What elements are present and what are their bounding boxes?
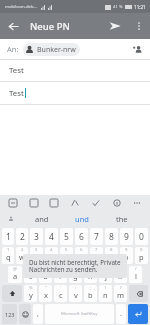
button[interactable]: Zwischenablage bbox=[46, 195, 62, 211]
button[interactable]: 6 bbox=[75, 228, 88, 245]
staticText: c bbox=[59, 290, 63, 300]
button[interactable]: 7 bbox=[90, 228, 103, 245]
button[interactable]: # bbox=[24, 266, 37, 283]
staticText: + bbox=[89, 266, 92, 272]
staticText: k bbox=[118, 271, 123, 281]
button[interactable]: @ bbox=[8, 266, 22, 283]
button[interactable]: * bbox=[54, 266, 67, 283]
button[interactable]: Eingabe bbox=[128, 304, 148, 324]
button[interactable]: 4 bbox=[45, 228, 58, 245]
staticText: q bbox=[6, 252, 11, 262]
button[interactable]: Senden bbox=[102, 13, 128, 39]
button[interactable]: + bbox=[84, 266, 97, 283]
button[interactable]: 0 bbox=[135, 247, 148, 264]
staticText: d bbox=[43, 271, 48, 281]
button[interactable]: 4 bbox=[45, 247, 58, 264]
button[interactable]: 7 bbox=[90, 247, 103, 264]
staticText: % bbox=[29, 285, 33, 291]
staticText: 0 bbox=[140, 247, 143, 253]
button[interactable]: Rechtschreibung bbox=[88, 195, 104, 211]
button[interactable]: & bbox=[39, 266, 52, 283]
button[interactable]: Empfänger hinzufügen bbox=[127, 39, 147, 59]
button[interactable]: % bbox=[24, 285, 37, 302]
staticText: 5 bbox=[64, 231, 69, 243]
button[interactable]: - bbox=[69, 266, 82, 283]
staticText: 6 bbox=[80, 247, 83, 253]
button[interactable]: 1 bbox=[2, 247, 14, 264]
button[interactable]: Zahlen bbox=[2, 304, 17, 324]
button[interactable]: ? bbox=[114, 285, 127, 302]
button[interactable]: ) bbox=[114, 266, 127, 283]
button[interactable]: 5 bbox=[60, 247, 73, 264]
staticText: 7 bbox=[94, 231, 99, 243]
button[interactable]: 2 bbox=[16, 228, 28, 245]
button[interactable]: : bbox=[69, 285, 82, 302]
button[interactable]: ! bbox=[99, 285, 112, 302]
button[interactable]: 8 bbox=[105, 247, 118, 264]
button[interactable]: . bbox=[116, 304, 126, 324]
staticText: t bbox=[65, 252, 68, 262]
staticText: 5 bbox=[65, 247, 68, 253]
staticText: 9 bbox=[125, 247, 128, 253]
button[interactable]: Sprachsuche bbox=[0, 211, 22, 227]
button[interactable]: 8 bbox=[105, 228, 118, 245]
button[interactable]: 0 bbox=[135, 228, 148, 245]
staticText: v bbox=[74, 290, 78, 300]
button[interactable]: Test bbox=[0, 60, 150, 81]
staticText: 1 bbox=[7, 247, 10, 253]
staticText: / bbox=[135, 266, 137, 272]
staticText: : bbox=[75, 285, 77, 291]
button[interactable]: ( bbox=[99, 266, 112, 283]
button[interactable]: ; bbox=[84, 285, 97, 302]
button[interactable]: und bbox=[62, 211, 102, 227]
staticText: 3 bbox=[34, 231, 39, 243]
button[interactable]: Info bbox=[109, 195, 125, 211]
button[interactable]: GIF bbox=[5, 195, 21, 211]
button[interactable]: 1 bbox=[2, 228, 14, 245]
staticText: j bbox=[105, 271, 107, 281]
button[interactable]: Emoji bbox=[19, 304, 31, 324]
button[interactable]: Sticker bbox=[26, 195, 42, 211]
button[interactable]: 3 bbox=[30, 247, 43, 264]
button[interactable]: 3 bbox=[30, 228, 43, 245]
button[interactable]: " bbox=[39, 285, 52, 302]
staticText: e bbox=[34, 252, 39, 262]
button[interactable]: Umschalt bbox=[2, 285, 22, 302]
button[interactable]: 6 bbox=[75, 247, 88, 264]
staticText: b bbox=[88, 290, 93, 300]
button[interactable]: Zurück bbox=[0, 13, 26, 39]
staticText: 3 bbox=[35, 247, 38, 253]
button[interactable]: 9 bbox=[120, 247, 133, 264]
button[interactable]: Weitere Optionen bbox=[128, 15, 150, 37]
button[interactable]: 5 bbox=[60, 228, 73, 245]
button[interactable]: Übersetzen bbox=[67, 195, 83, 211]
staticText: w bbox=[19, 252, 25, 262]
button[interactable]: , bbox=[33, 304, 43, 324]
staticText: m bbox=[117, 290, 125, 300]
staticText: Bunker-nrw bbox=[37, 45, 76, 55]
button[interactable]: Leertaste bbox=[45, 304, 114, 324]
staticText: r bbox=[50, 252, 54, 262]
staticText: , bbox=[37, 309, 39, 319]
button[interactable]: An: bbox=[0, 39, 150, 59]
staticText: 8 bbox=[109, 231, 114, 243]
staticText: f bbox=[59, 271, 62, 281]
button[interactable]: and bbox=[22, 211, 62, 227]
button[interactable]: Löschen bbox=[129, 285, 148, 302]
staticText: g bbox=[73, 271, 78, 281]
button[interactable]: / bbox=[129, 266, 142, 283]
button[interactable]: the bbox=[102, 211, 142, 227]
staticText: 9 bbox=[124, 231, 129, 243]
staticText: & bbox=[44, 266, 48, 272]
staticText: mobilcom-deb... bbox=[5, 4, 37, 10]
staticText: 11:21 bbox=[134, 4, 146, 10]
button[interactable]: 9 bbox=[120, 228, 133, 245]
staticText: 0 bbox=[139, 231, 144, 243]
button[interactable]: ' bbox=[54, 285, 67, 302]
staticText: 123 bbox=[5, 311, 15, 318]
staticText: l bbox=[135, 271, 137, 281]
button[interactable]: 2 bbox=[16, 247, 28, 264]
button[interactable]: Mehr bbox=[129, 195, 145, 211]
button[interactable]: Test bbox=[0, 82, 150, 104]
